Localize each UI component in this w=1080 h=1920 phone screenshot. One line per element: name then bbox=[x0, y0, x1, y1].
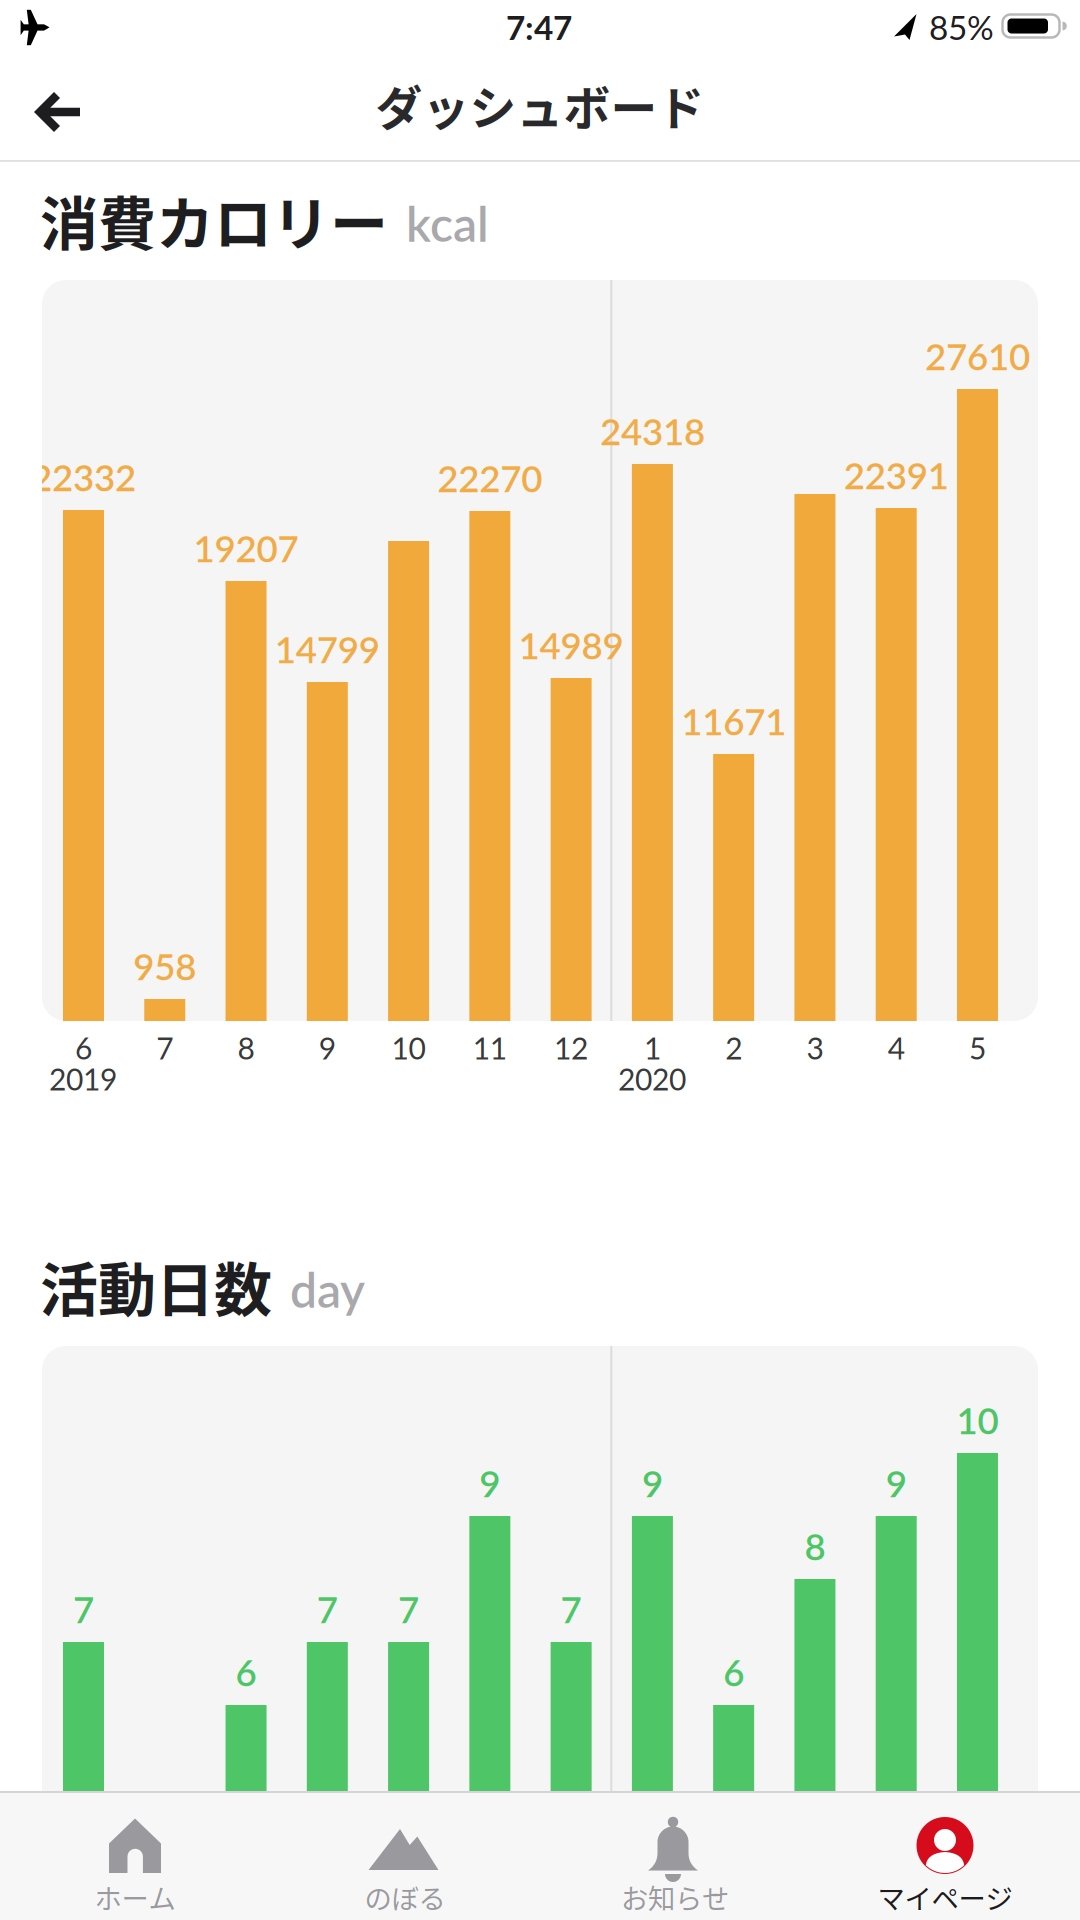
staticText: 14989 bbox=[519, 623, 624, 667]
staticText: 活動日数 bbox=[40, 1244, 272, 1328]
staticText: 7 bbox=[317, 1587, 338, 1631]
staticText: 27610 bbox=[925, 334, 1030, 378]
staticText: day bbox=[290, 1260, 365, 1318]
staticText: 7:47 bbox=[506, 7, 572, 47]
staticText: 消費カロリー bbox=[40, 178, 388, 262]
staticText: 4 bbox=[888, 1030, 905, 1066]
staticText: 8 bbox=[237, 1030, 254, 1066]
staticText: 9 bbox=[642, 1461, 663, 1505]
staticText: 9 bbox=[479, 1461, 500, 1505]
staticText: 1 bbox=[644, 1030, 661, 1066]
staticText: 85% bbox=[929, 7, 994, 47]
staticText: 7 bbox=[561, 1587, 582, 1631]
staticText: 12 bbox=[554, 1030, 588, 1066]
staticText: 10 bbox=[392, 1030, 426, 1066]
staticText: 19207 bbox=[193, 526, 298, 570]
staticText: kcal bbox=[406, 194, 489, 252]
staticText: 22270 bbox=[437, 456, 542, 500]
staticText: ホーム bbox=[94, 1877, 175, 1917]
staticText: お知らせ bbox=[621, 1877, 729, 1917]
staticText: 14799 bbox=[275, 627, 380, 671]
staticText: 6 bbox=[235, 1650, 256, 1694]
staticText: 2 bbox=[725, 1030, 742, 1066]
staticText: ダッシュボード bbox=[375, 71, 704, 139]
staticText: 3 bbox=[806, 1030, 823, 1066]
staticText: 7 bbox=[73, 1587, 94, 1631]
staticText: 6 bbox=[723, 1650, 744, 1694]
staticText: 2020 bbox=[618, 1061, 686, 1097]
staticText: のぼる bbox=[364, 1877, 445, 1917]
staticText: 22332 bbox=[31, 455, 136, 499]
staticText: 24318 bbox=[600, 409, 705, 453]
staticText: マイページ bbox=[877, 1877, 1012, 1917]
staticText: 2019 bbox=[49, 1061, 117, 1097]
staticText: 22391 bbox=[844, 453, 949, 497]
staticText: 9 bbox=[319, 1030, 336, 1066]
staticText: 958 bbox=[133, 944, 196, 988]
staticText: 10 bbox=[956, 1398, 998, 1442]
staticText: 9 bbox=[886, 1461, 907, 1505]
staticText: 11 bbox=[473, 1030, 507, 1066]
staticText: 7 bbox=[398, 1587, 419, 1631]
staticText: 7 bbox=[156, 1030, 173, 1066]
staticText: 5 bbox=[969, 1030, 986, 1066]
staticText: 8 bbox=[804, 1524, 825, 1568]
staticText: 11671 bbox=[681, 699, 786, 743]
staticText: 6 bbox=[75, 1030, 92, 1066]
